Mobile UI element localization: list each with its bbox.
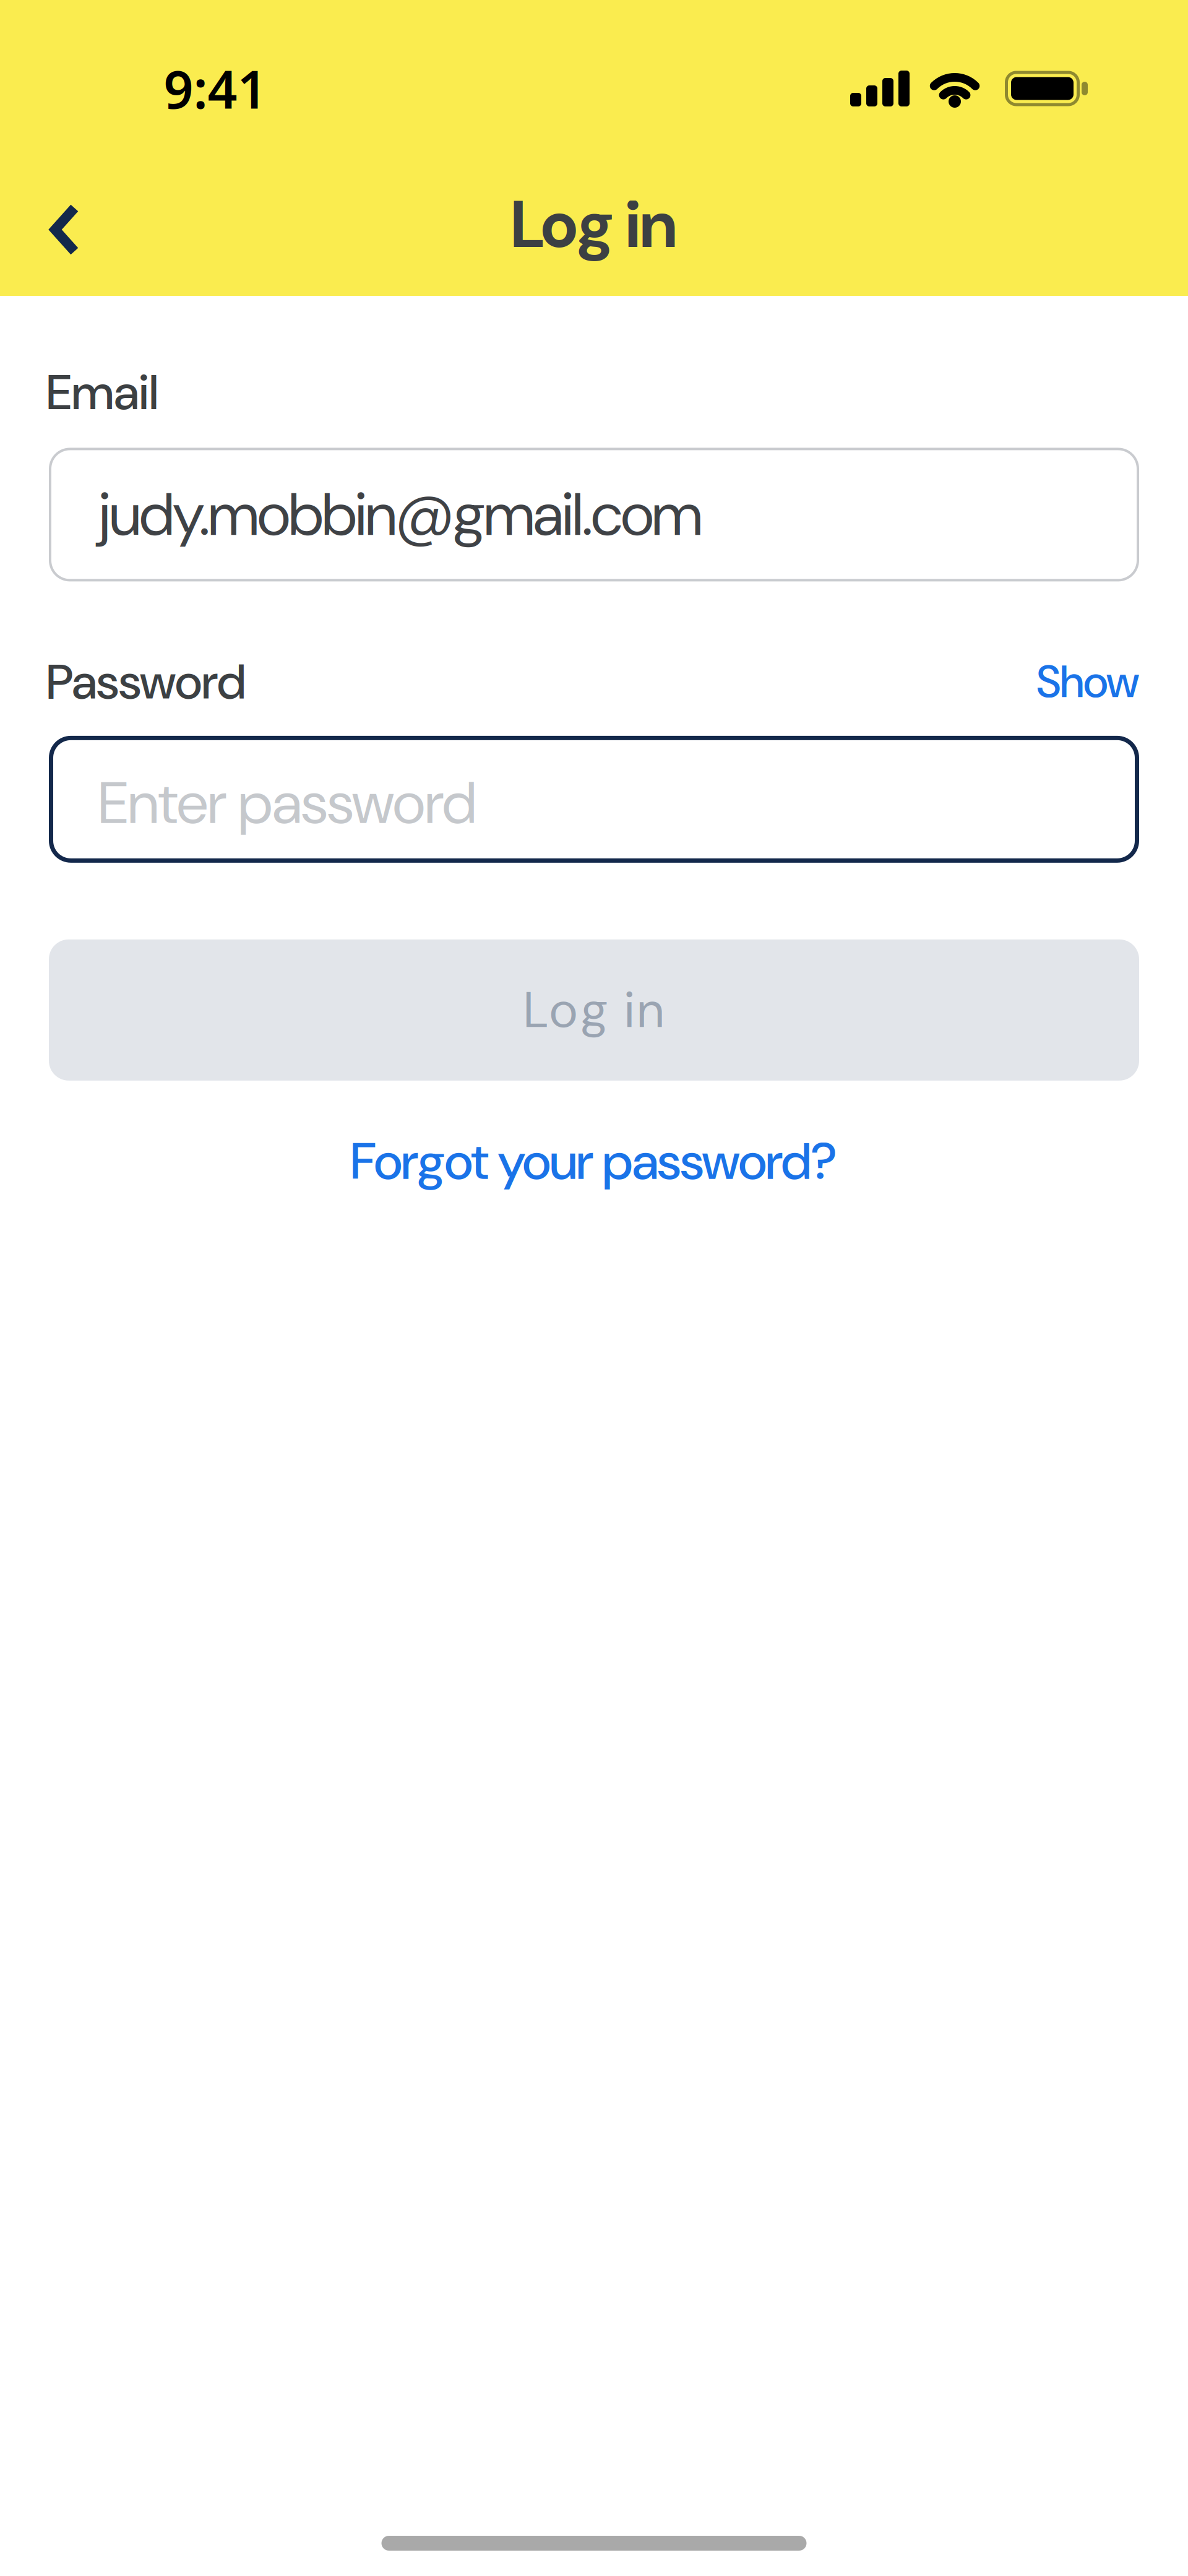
staticText: Show (1036, 653, 1139, 711)
button[interactable]: Show (1036, 653, 1139, 711)
staticText: Log in (511, 182, 677, 267)
staticText: Enter password (98, 765, 476, 841)
staticText: Email (46, 361, 158, 424)
staticText: Log in (524, 978, 664, 1042)
button[interactable]: Log in (49, 939, 1139, 1081)
staticText: judy.mobbin@gmail.com (98, 476, 702, 553)
button[interactable]: Back (0, 185, 96, 270)
staticText: Forgot your password? (351, 1128, 837, 1195)
staticText: 9:41 (164, 54, 267, 123)
staticText: Password (46, 650, 246, 714)
button[interactable]: Forgot your password? (351, 1128, 837, 1195)
